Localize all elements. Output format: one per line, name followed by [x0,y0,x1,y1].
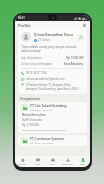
staticText: Profile [18,23,31,28]
staticText: Dimas Ramadhan Putra [34,32,73,37]
staticText: Rp. 7.000.000 [66,56,84,60]
button[interactable]: 0812 3217 7784 [21,71,84,75]
button[interactable]: Rekrutmen [60,156,75,167]
staticText: Staff's Executive [22,118,43,122]
staticText: 09:41 [18,16,25,20]
staticText: 27 tahun [38,38,51,42]
staticText: Melakukan canvasing, follow up client [22,128,67,131]
staticText: Lokasi kerja diharapkan [21,62,53,66]
staticText: Jun 2018 - Jun 2020 [30,141,53,144]
staticText: 0812 3217 7784 [26,71,47,75]
staticText: Nama Konsultan [22,113,46,117]
staticText: Chat [35,163,40,166]
staticText: Gaji diharapkan [21,56,42,60]
staticText: Kota Bandung [64,62,84,66]
button[interactable]: More options [82,23,87,28]
staticText: PT Cita Tekad Gemilang [30,104,67,108]
button[interactable]: PT Cita Tekad Gemilang [18,102,87,133]
button[interactable]: PT Continous Systems [18,135,87,146]
staticText: PT Continous Systems [30,137,65,141]
staticText: Saya [80,163,85,166]
button[interactable]: Loker [45,156,60,167]
staticText: "Saya adalah orang yang sangat antusias … [21,45,77,53]
button[interactable]: Dimas Ramadhan Putra [18,29,87,94]
staticText: Loker [50,163,56,166]
button[interactable]: Beranda [15,156,30,167]
staticText: Rp. 5.700.000 [22,123,39,127]
staticText: dimas.ramadhan@gmail.com [26,77,65,81]
staticText: Pengalaman [20,96,41,101]
button[interactable]: Saya [75,156,90,167]
button[interactable]: dimas.ramadhan@gmail.com [21,77,84,81]
staticText: Jl.Pradana Bersito 70, Antapani Kidul, A… [26,83,79,91]
button[interactable]: Chat [30,156,45,167]
staticText: Sep 2020 - Jan 2023 [30,108,53,111]
staticText: Rekrutmen [62,163,73,166]
button[interactable]: Edit profile [77,34,84,41]
staticText: Beranda [18,163,27,166]
